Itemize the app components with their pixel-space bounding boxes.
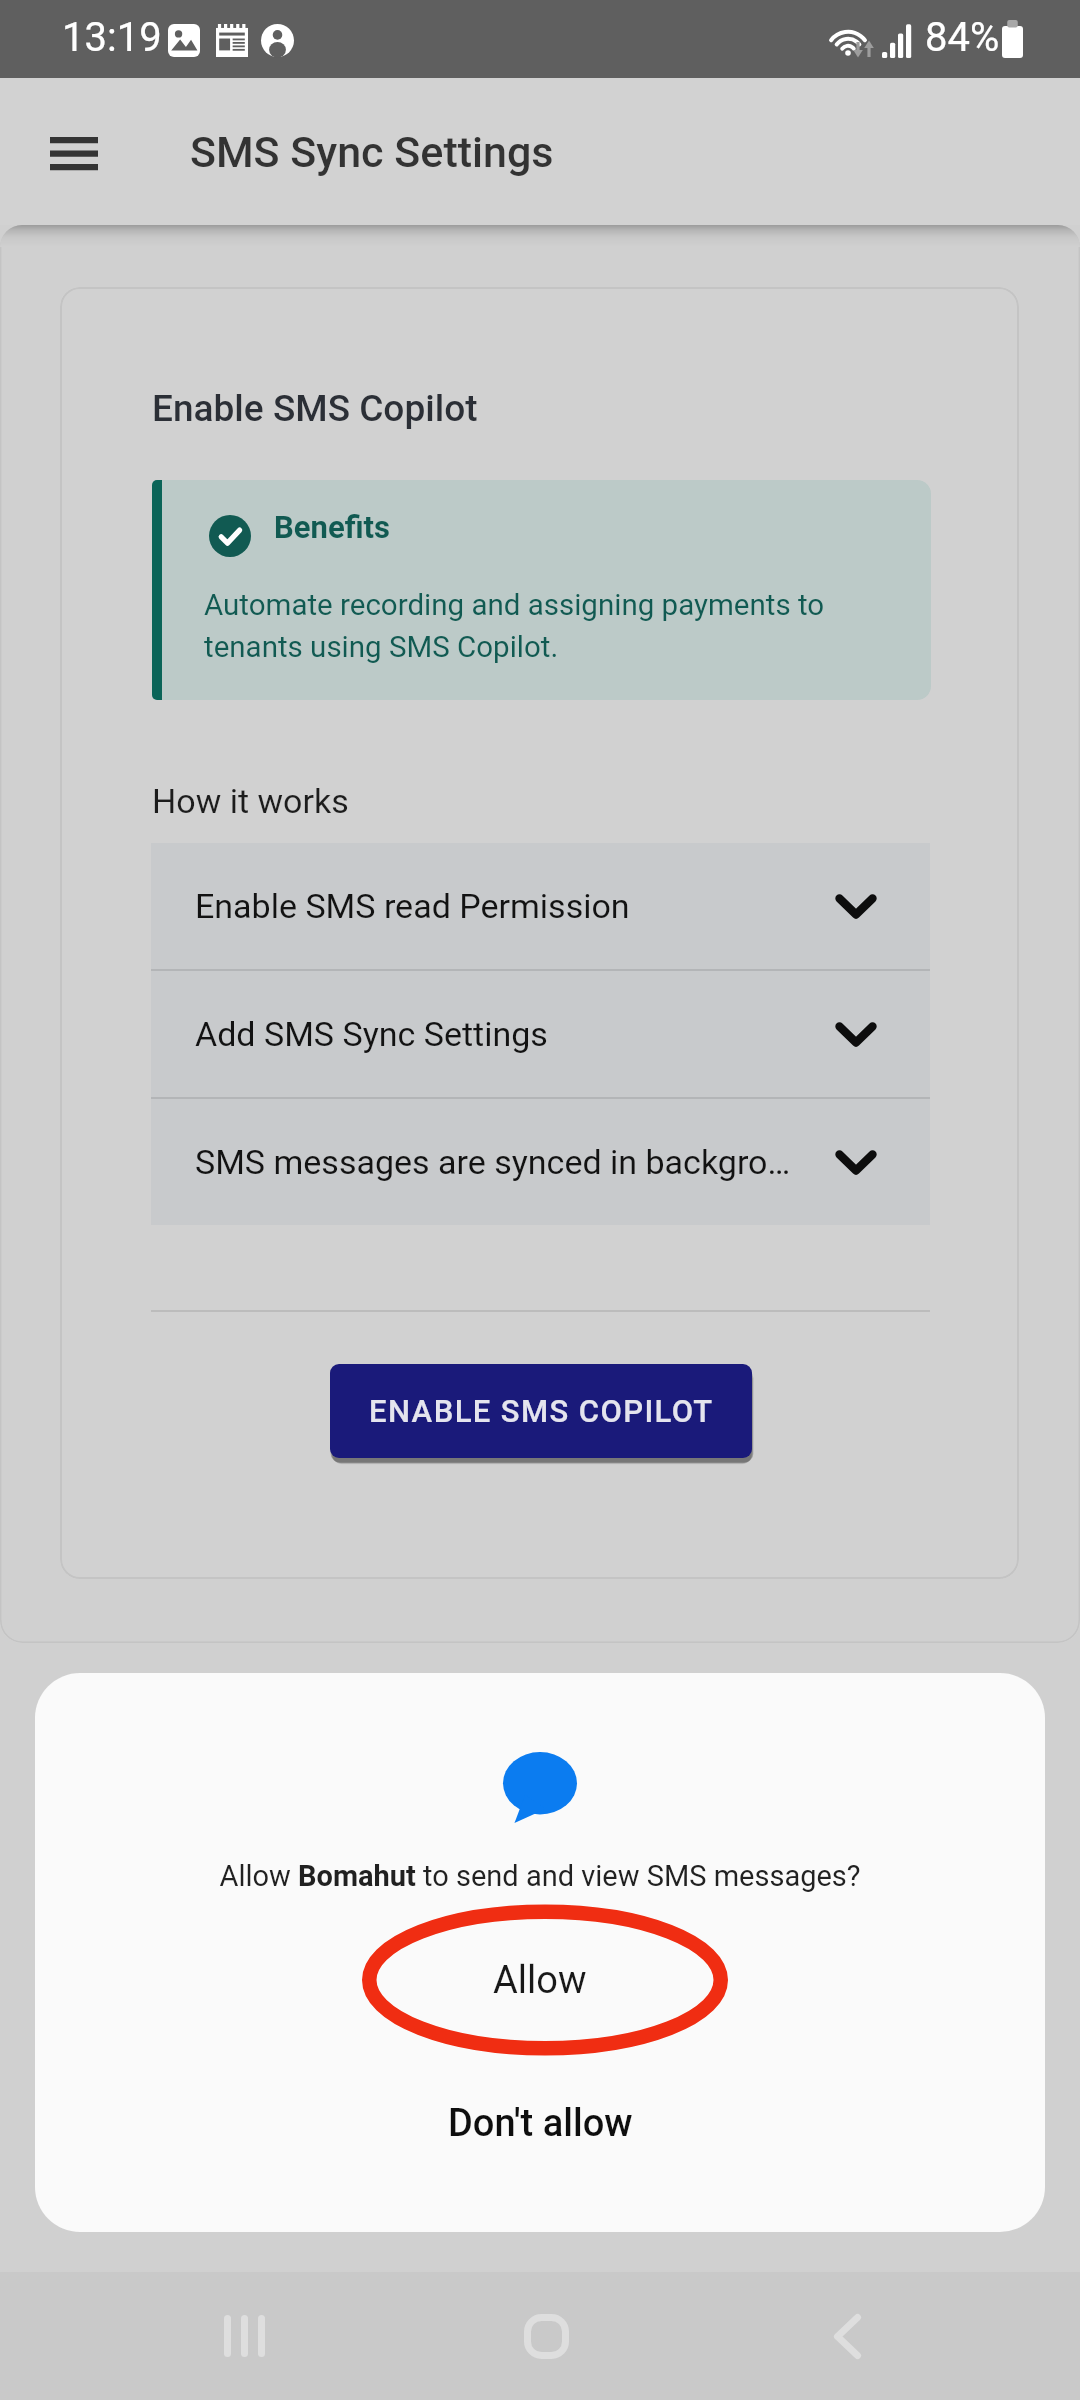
button[interactable]: Back: [791, 2276, 903, 2396]
button[interactable]: Add SMS Sync Settings: [151, 971, 930, 1097]
staticText: Benefits: [274, 509, 390, 545]
button[interactable]: Home: [490, 2276, 602, 2396]
staticText: Allow Bomahut to send and view SMS messa…: [219, 1859, 861, 1893]
button[interactable]: ENABLE SMS COPILOT: [330, 1364, 752, 1458]
staticText: SMS messages are synced in backgro…: [195, 1142, 835, 1182]
button[interactable]: Enable SMS read Permission: [151, 843, 930, 969]
button[interactable]: Recent apps: [188, 2276, 300, 2396]
button[interactable]: Open navigation menu: [25, 105, 123, 203]
staticText: 13:19: [62, 14, 162, 61]
staticText: Add SMS Sync Settings: [195, 1014, 835, 1054]
staticText: SMS Sync Settings: [190, 127, 554, 177]
staticText: Automate recording and assigning payment…: [204, 588, 884, 664]
button[interactable]: Allow: [35, 1904, 1045, 2056]
button[interactable]: Don't allow: [35, 2078, 1045, 2168]
staticText: Enable SMS Copilot: [152, 387, 478, 430]
staticText: 84%: [925, 14, 1000, 61]
staticText: Allow: [493, 1958, 587, 2003]
staticText: ENABLE SMS COPILOT: [369, 1393, 714, 1429]
staticText: How it works: [152, 781, 349, 821]
button[interactable]: SMS messages are synced in backgro…: [151, 1099, 930, 1225]
staticText: Enable SMS read Permission: [195, 886, 835, 926]
staticText: Don't allow: [448, 2101, 633, 2146]
